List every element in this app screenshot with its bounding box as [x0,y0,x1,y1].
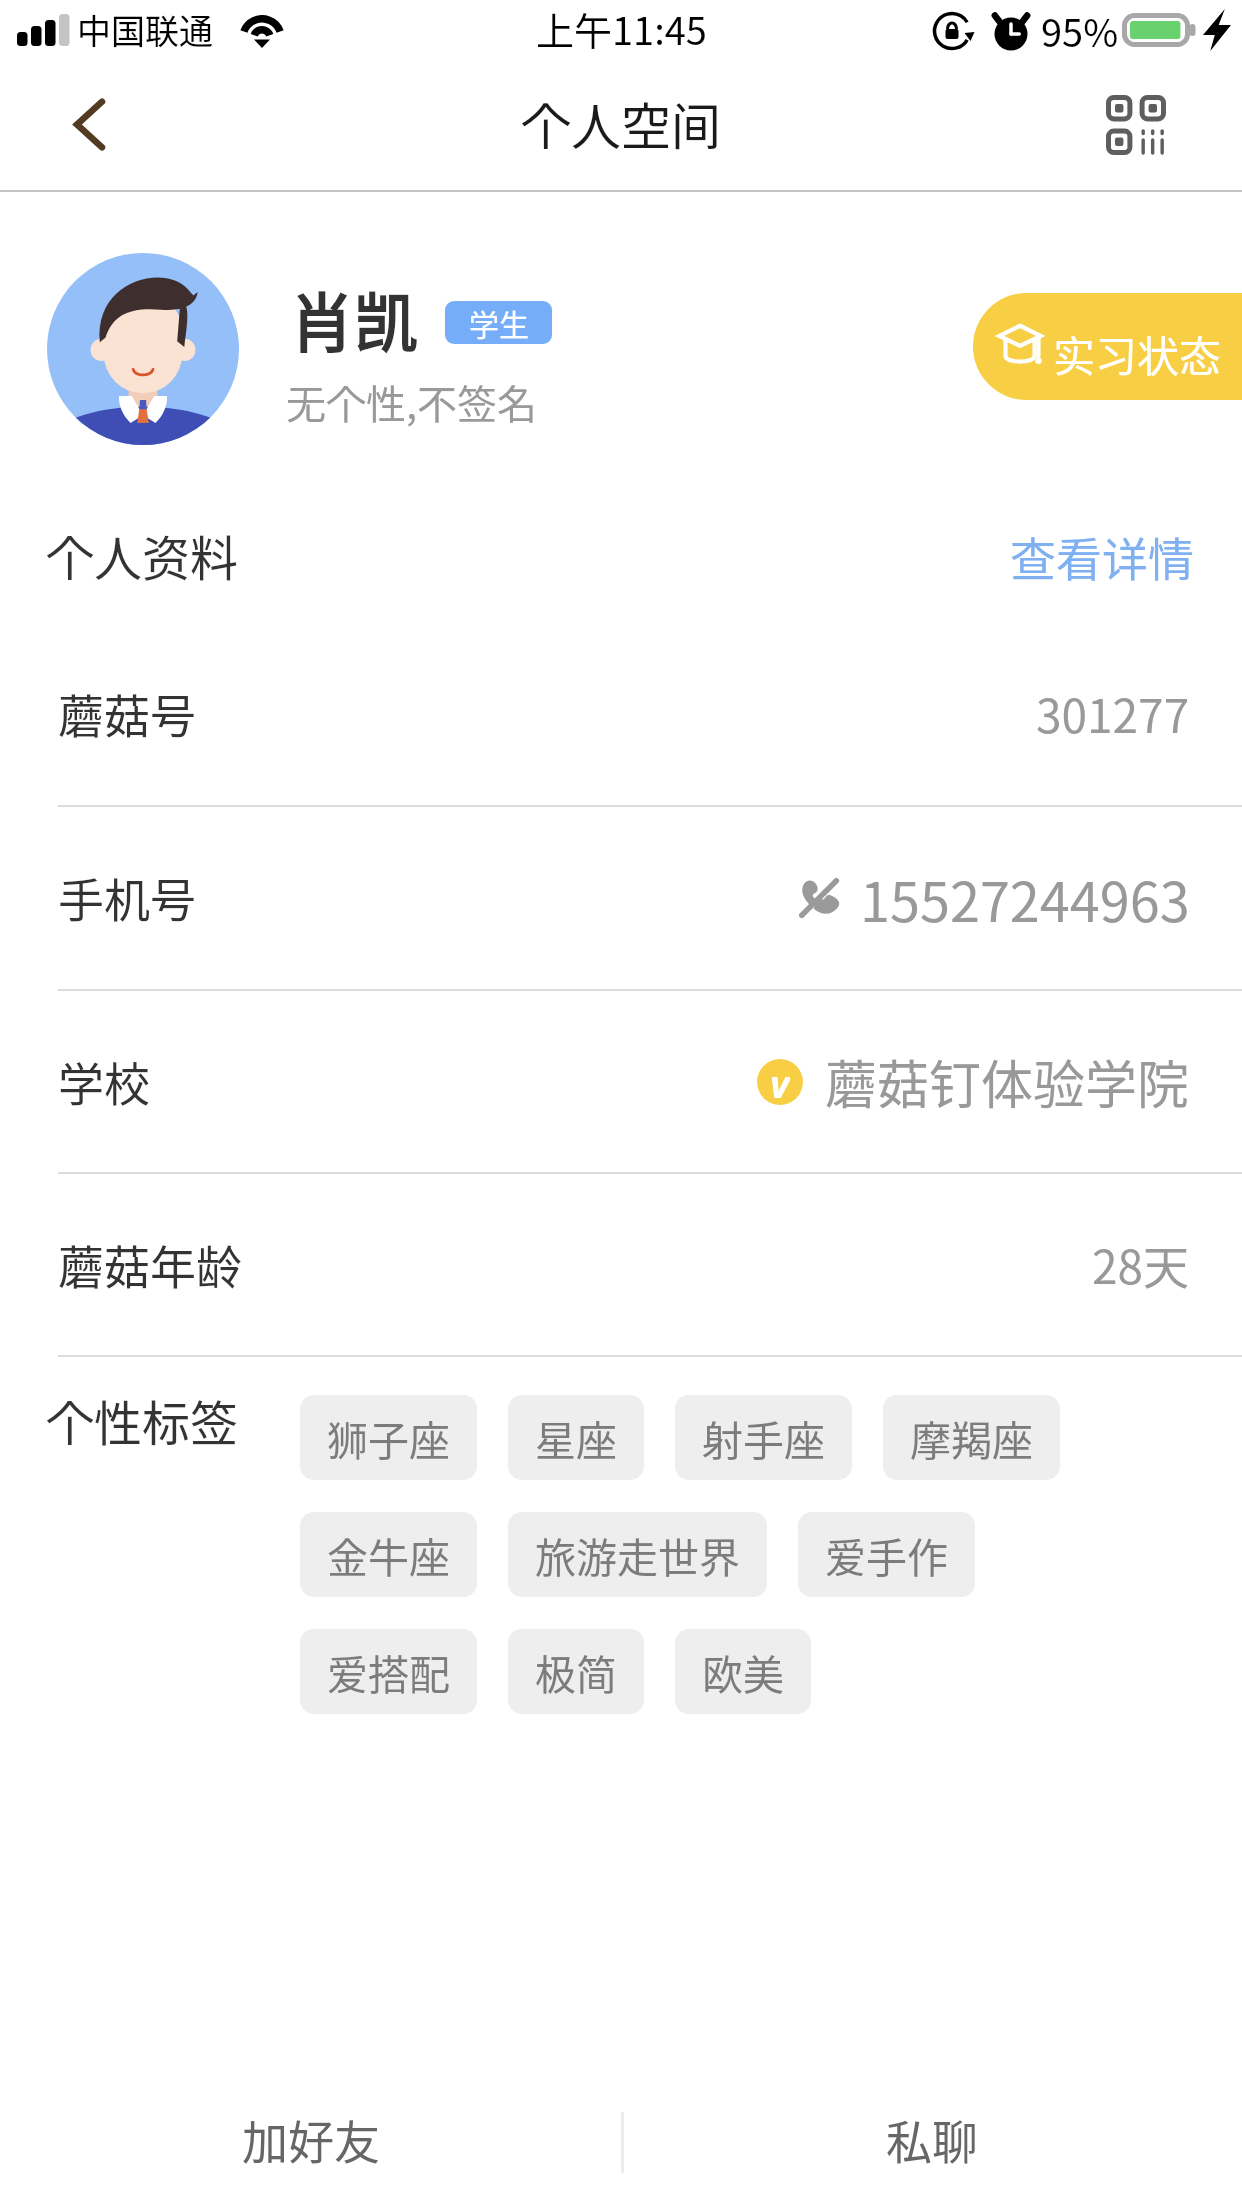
staticText: 私聊 [886,2106,978,2173]
staticText: 极简 [535,1642,617,1701]
button[interactable]: 蘑菇号 [0,622,1242,805]
staticText: 个性标签 [46,1385,239,1455]
staticText: 肖凯 [290,272,418,365]
button[interactable]: QR code [1082,72,1222,190]
button[interactable]: 查看详情 [1010,523,1194,590]
staticText: 加好友 [242,2106,380,2173]
staticText: 手机号 [58,864,196,931]
staticText: 狮子座 [327,1408,450,1467]
staticText: 摩羯座 [910,1408,1033,1467]
staticText: 蘑菇号 [58,680,196,747]
staticText: 射手座 [702,1408,825,1467]
staticText: 实习状态 [1053,323,1222,384]
staticText: 爱手作 [825,1525,948,1584]
button[interactable]: 学校 [0,990,1242,1173]
button[interactable]: 欧美 [675,1629,811,1714]
staticText: 无个性,不签名 [286,373,538,431]
staticText: 301277 [1036,680,1190,747]
button[interactable]: 实习状态 [973,293,1242,400]
staticText: 金牛座 [327,1525,450,1584]
button[interactable]: 狮子座 [300,1395,477,1480]
staticText: 蘑菇钉体验学院 [825,1044,1190,1119]
staticText: 星座 [535,1408,617,1467]
button[interactable]: 星座 [508,1395,644,1480]
button[interactable]: 爱搭配 [300,1629,477,1714]
button[interactable]: 蘑菇年龄 [0,1173,1242,1356]
staticText: 28天 [1092,1231,1190,1298]
button[interactable]: 个人资料 [46,520,239,590]
button[interactable]: 金牛座 [300,1512,477,1597]
staticText: 95% [1041,3,1119,58]
staticText: 15527244963 [860,859,1190,937]
staticText: 旅游走世界 [535,1525,740,1584]
staticText: 学生 [469,301,529,344]
button[interactable]: Back [20,72,160,190]
staticText: 个人资料 [46,520,239,590]
staticText: 蘑菇年龄 [58,1231,242,1298]
staticText: 爱搭配 [327,1642,450,1701]
staticText: 个人空间 [521,87,721,159]
button[interactable]: 极简 [508,1629,644,1714]
button[interactable]: 摩羯座 [883,1395,1060,1480]
staticText: 学校 [58,1048,150,1115]
staticText: 中国联通 [77,5,213,54]
button[interactable]: 旅游走世界 [508,1512,767,1597]
button[interactable]: 爱手作 [798,1512,975,1597]
staticText: 欧美 [702,1642,784,1701]
button[interactable]: 私聊 [621,2060,1242,2208]
staticText: v [770,1059,790,1103]
button[interactable]: 加好友 [0,2060,621,2208]
staticText: 查看详情 [1010,523,1194,590]
staticText: 上午11:45 [536,1,707,56]
button[interactable]: 手机号 [0,806,1242,989]
button[interactable]: 射手座 [675,1395,852,1480]
